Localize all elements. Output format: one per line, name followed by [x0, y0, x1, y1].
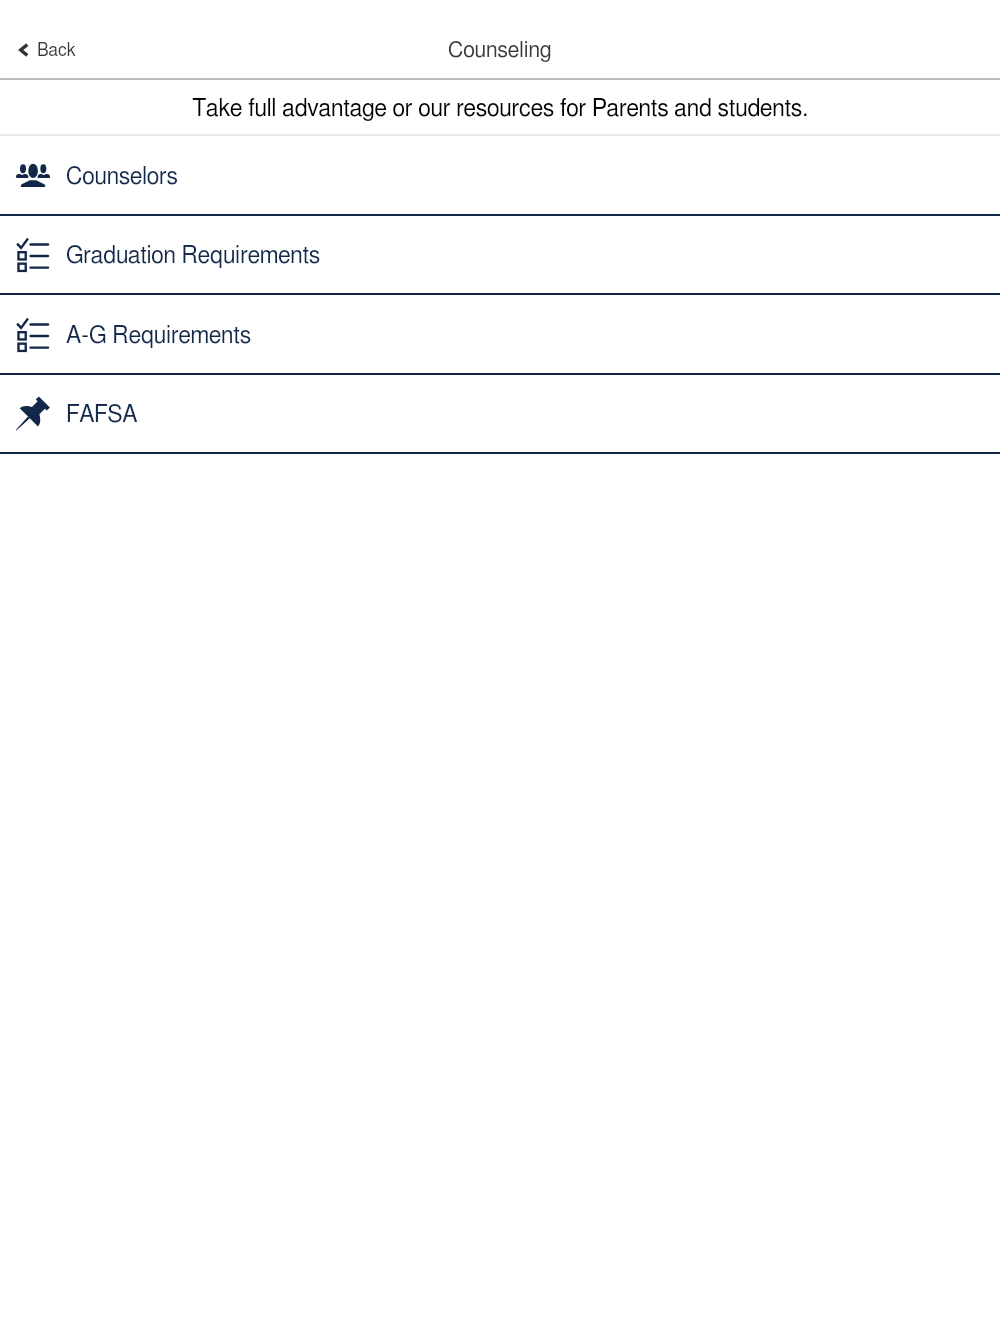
staticText: Take full advantage or our resources for…	[192, 98, 808, 121]
button[interactable]: Counselors	[0, 136, 1000, 214]
other: Back	[19, 43, 29, 57]
staticText: Counseling	[448, 40, 552, 62]
staticText: Back	[37, 42, 76, 60]
staticText: FAFSA	[66, 404, 138, 427]
button[interactable]: Graduation Requirements	[0, 215, 1000, 293]
staticText: Counselors	[66, 166, 178, 189]
button[interactable]: A-G Requirements	[0, 295, 1000, 373]
staticText: A-G Requirements	[66, 325, 251, 348]
staticText: Graduation Requirements	[66, 245, 321, 268]
button[interactable]: FAFSA	[0, 374, 1000, 452]
button[interactable]: Back	[13, 37, 82, 65]
